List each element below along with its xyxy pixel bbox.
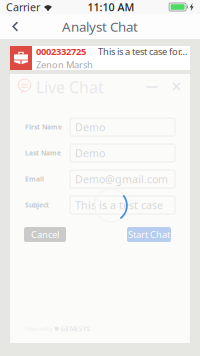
button[interactable]: Back xyxy=(0,14,30,39)
staticText: Subject xyxy=(25,201,49,209)
button[interactable]: Cancel xyxy=(24,227,66,242)
staticText: This is a test case xyxy=(75,198,163,212)
staticText: This is a test case for… xyxy=(98,45,187,57)
staticText: Carrier xyxy=(6,0,40,14)
staticText: Email xyxy=(25,175,44,183)
staticText: First Name xyxy=(25,123,62,131)
button[interactable]: Minimize xyxy=(137,78,167,96)
staticText: Live Chat xyxy=(36,76,104,98)
staticText: Demo xyxy=(75,146,105,160)
staticText: Analyst Chat xyxy=(62,18,138,35)
staticText: 0002332725 xyxy=(36,45,86,57)
staticText: Demo@gmail.com xyxy=(75,172,168,186)
staticText: Cancel xyxy=(31,228,59,241)
button[interactable]: Close xyxy=(167,78,187,96)
staticText: Powered by xyxy=(25,325,53,332)
button[interactable]: Start Chat xyxy=(127,227,171,242)
staticText: Zenon Marsh xyxy=(36,58,93,71)
staticText: Last Name xyxy=(25,149,61,157)
staticText: 11:10 AM xyxy=(87,0,134,14)
staticText: Start Chat xyxy=(128,228,170,241)
staticText: GENESYS xyxy=(60,324,90,333)
staticText: Demo xyxy=(75,120,105,134)
button[interactable]: 0002332725 xyxy=(10,46,190,70)
